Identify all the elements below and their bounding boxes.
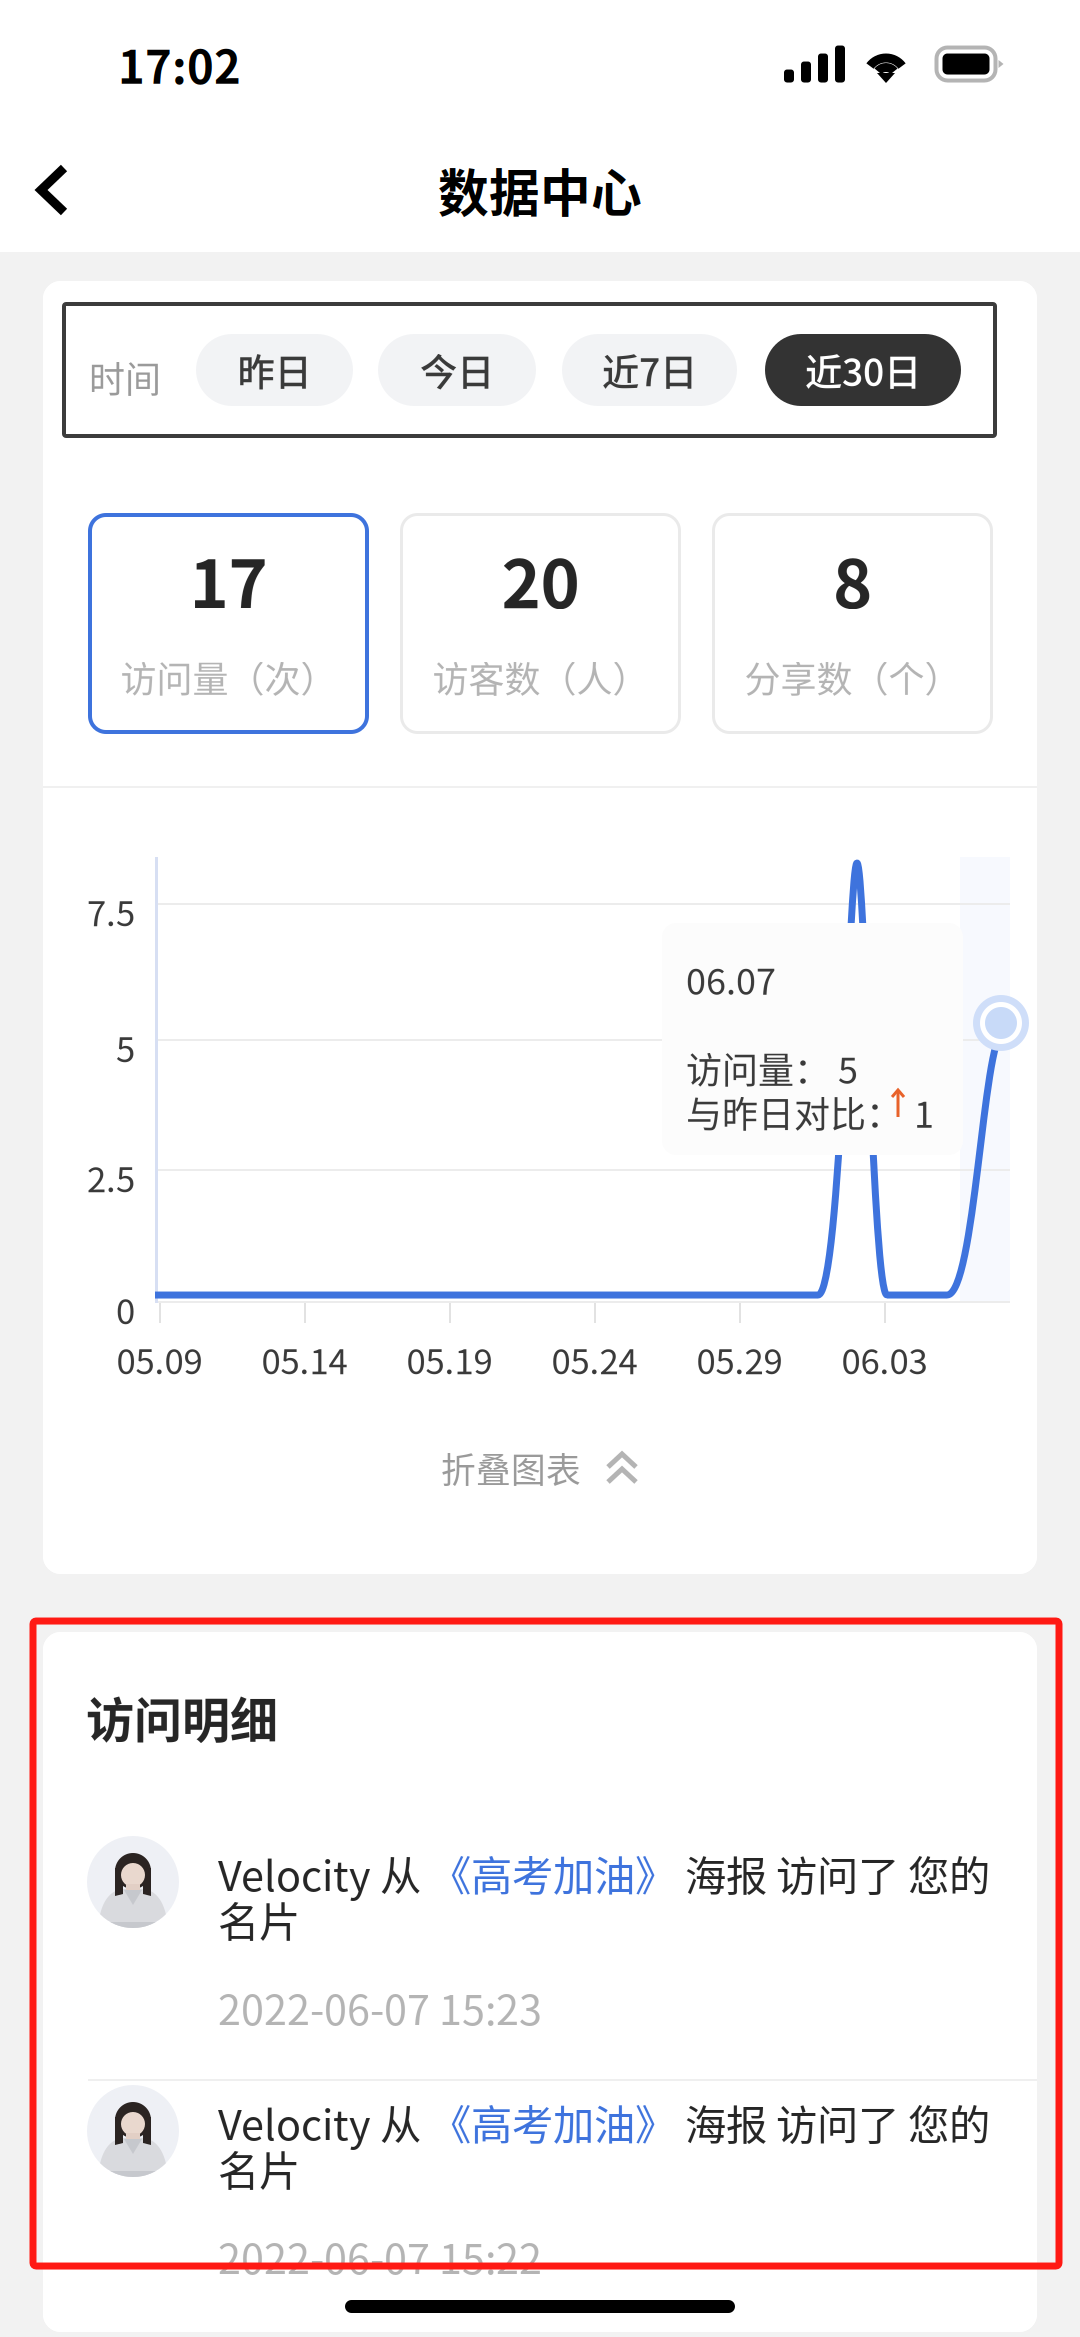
- staticText: 5: [838, 1042, 858, 1094]
- staticText: 5: [116, 1022, 135, 1072]
- staticText: 06.03: [841, 1334, 927, 1384]
- staticText: Velocity 从: [218, 2092, 430, 2152]
- button[interactable]: 20: [400, 513, 681, 734]
- staticText: 名片: [218, 2138, 300, 2198]
- staticText: 2.5: [87, 1152, 135, 1202]
- staticText: 06.07: [686, 953, 776, 1005]
- staticText: 2022-06-07 15:22: [218, 2226, 542, 2286]
- staticText: 05.24: [551, 1334, 637, 1384]
- staticText: 05.09: [116, 1334, 202, 1384]
- staticText: 海报 访问了 您的: [676, 1843, 990, 1903]
- button[interactable]: 近30日: [765, 334, 961, 406]
- staticText: 访问量（次）: [120, 651, 336, 703]
- staticText: 数据中心: [438, 153, 642, 227]
- staticText: 05.19: [406, 1334, 492, 1384]
- staticText: 分享数（个）: [744, 651, 960, 703]
- staticText: 访问明细: [86, 1682, 278, 1751]
- button[interactable]: 8: [712, 513, 993, 734]
- staticText: 访客数（人）: [432, 651, 648, 703]
- staticText: 折叠图表: [441, 1443, 581, 1493]
- staticText: 今日: [420, 343, 494, 397]
- staticText: 05.14: [261, 1334, 347, 1384]
- staticText: 时间: [89, 351, 161, 403]
- staticText: 05.29: [696, 1334, 782, 1384]
- staticText: 《高考加油》: [430, 2092, 676, 2152]
- button[interactable]: Back: [0, 135, 105, 245]
- staticText: 17: [189, 531, 267, 627]
- staticText: Velocity 从: [218, 1843, 430, 1903]
- staticText: 访问量：: [686, 1042, 830, 1094]
- staticText: 0: [116, 1284, 135, 1334]
- staticText: 昨日: [237, 343, 311, 397]
- button[interactable]: 昨日: [196, 334, 353, 406]
- button[interactable]: 今日: [378, 334, 536, 406]
- button[interactable]: 17: [88, 513, 369, 734]
- staticText: 2022-06-07 15:23: [218, 1977, 542, 2037]
- staticText: 与昨日对比：: [686, 1086, 902, 1138]
- staticText: 海报 访问了 您的: [676, 2092, 990, 2152]
- button[interactable]: 近7日: [562, 334, 737, 406]
- staticText: 近7日: [602, 343, 697, 397]
- staticText: 20: [501, 531, 579, 627]
- staticText: 8: [833, 531, 872, 627]
- staticText: 名片: [218, 1889, 300, 1949]
- staticText: 《高考加油》: [430, 1843, 676, 1903]
- button[interactable]: Velocity 从: [43, 1832, 1037, 2068]
- staticText: 7.5: [87, 886, 135, 936]
- staticText: 17:02: [118, 31, 241, 97]
- button[interactable]: 折叠图表: [43, 1433, 1037, 1503]
- staticText: 近30日: [805, 343, 921, 397]
- staticText: 1: [914, 1086, 934, 1138]
- button[interactable]: Velocity 从: [43, 2081, 1037, 2317]
